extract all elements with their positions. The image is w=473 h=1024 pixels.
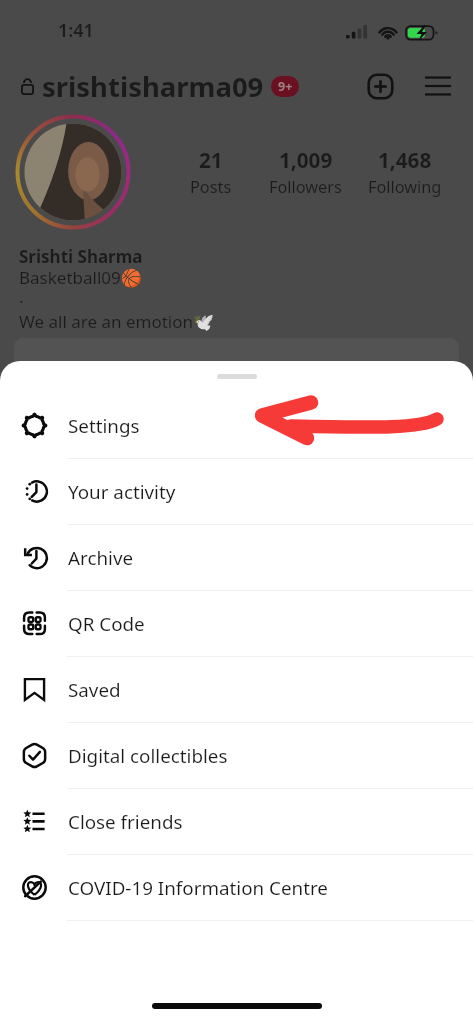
button[interactable]: [14, 338, 459, 372]
staticText: Close friends: [68, 809, 183, 835]
staticText: .: [19, 285, 24, 308]
staticText: 9+: [278, 78, 293, 95]
button[interactable]: Your activity: [0, 459, 473, 525]
staticText: Saved: [68, 677, 121, 703]
staticText: 1,468: [378, 146, 432, 174]
staticText: 21: [199, 146, 223, 174]
button[interactable]: QR Code: [0, 591, 473, 657]
button[interactable]: Digital collectibles: [0, 723, 473, 789]
staticText: Srishti Sharma: [19, 245, 143, 268]
staticText: Your activity: [68, 479, 176, 505]
staticText: Settings: [68, 413, 140, 439]
button[interactable]: Archive: [0, 525, 473, 591]
button[interactable]: Menu: [425, 73, 451, 99]
staticText: 1,009: [279, 146, 333, 174]
staticText: 1:41: [58, 18, 94, 43]
staticText: We all are an emotion🕊: [19, 310, 215, 333]
button[interactable]: Close friends: [0, 789, 473, 855]
staticText: srishtisharma09: [42, 68, 264, 105]
staticText: QR Code: [68, 611, 145, 637]
button[interactable]: COVID-19 Information Centre: [0, 855, 473, 921]
staticText: Following: [368, 176, 442, 198]
staticText: Posts: [190, 176, 232, 198]
staticText: Archive: [68, 545, 134, 571]
staticText: COVID-19 Information Centre: [68, 875, 328, 901]
button[interactable]: Create: [367, 73, 394, 100]
button[interactable]: Saved: [0, 657, 473, 723]
staticText: Followers: [269, 176, 342, 198]
staticText: Digital collectibles: [68, 743, 228, 769]
staticText: Basketball09🏀: [19, 266, 142, 289]
button[interactable]: Settings: [0, 393, 473, 459]
